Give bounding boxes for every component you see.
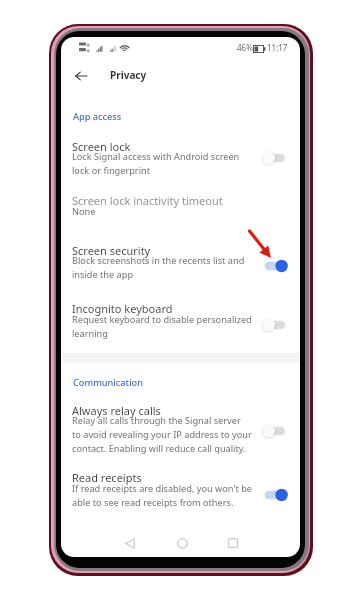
button[interactable]: Home bbox=[168, 529, 196, 557]
staticText: Privacy bbox=[110, 68, 147, 82]
button[interactable]: Switch off bbox=[261, 420, 295, 442]
button[interactable]: Switch off bbox=[261, 314, 295, 336]
staticText: None bbox=[72, 205, 96, 218]
button[interactable] bbox=[61, 237, 300, 289]
button[interactable] bbox=[61, 133, 300, 185]
button[interactable] bbox=[61, 465, 300, 517]
staticText: able to see read receipts from others. bbox=[72, 496, 234, 509]
staticText: Block screenshots in the recents list an… bbox=[72, 254, 245, 267]
button[interactable] bbox=[61, 297, 300, 349]
staticText: contact. Enabling will reduce call quali… bbox=[72, 442, 246, 455]
staticText: 46% bbox=[237, 42, 253, 53]
staticText: Screen lock bbox=[72, 139, 131, 154]
staticText: to avoid revealing your IP address to yo… bbox=[72, 428, 252, 441]
staticText: inside the app bbox=[72, 268, 134, 281]
staticText: Communication bbox=[73, 376, 143, 389]
button[interactable]: Switch off bbox=[261, 147, 295, 169]
button[interactable]: Recents bbox=[219, 529, 247, 557]
staticText: Lock Signal access with Android screen bbox=[72, 150, 240, 163]
staticText: Screen lock inactivity timeout bbox=[72, 193, 223, 208]
staticText: learning bbox=[72, 327, 108, 340]
staticText: Incognito keyboard bbox=[72, 301, 173, 316]
button[interactable] bbox=[61, 188, 300, 228]
button[interactable] bbox=[61, 397, 300, 462]
staticText: Screen security bbox=[72, 243, 151, 258]
button[interactable]: Switch on bbox=[261, 484, 295, 506]
staticText: Request keyboard to disable personalized bbox=[72, 313, 252, 326]
staticText: Relay all calls through the Signal serve… bbox=[72, 414, 241, 427]
staticText: If read receipts are disabled, you won't… bbox=[72, 482, 253, 495]
staticText: 11:17 bbox=[267, 42, 288, 53]
staticText: Read receipts bbox=[72, 470, 142, 485]
button[interactable]: Back bbox=[68, 63, 94, 89]
staticText: App access bbox=[73, 110, 122, 123]
staticText: Always relay calls bbox=[72, 403, 161, 418]
staticText: lock or fingerprint bbox=[72, 164, 151, 177]
button[interactable]: Back bbox=[116, 529, 144, 557]
button[interactable]: Switch on bbox=[261, 255, 295, 277]
